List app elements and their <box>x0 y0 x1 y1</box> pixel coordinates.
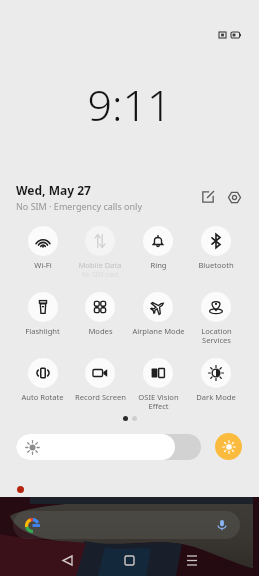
button[interactable]: Recents <box>176 544 207 576</box>
staticText: Auto Rotate <box>21 392 64 402</box>
button[interactable]: OSIE Vision Effect <box>129 354 187 420</box>
button[interactable]: Modes <box>71 288 129 354</box>
button[interactable] <box>13 511 240 539</box>
button[interactable]: Home <box>114 544 145 576</box>
button[interactable]: Flashlight <box>14 288 71 354</box>
button[interactable]: Ring <box>129 222 187 288</box>
button[interactable]: Mobile Data <box>71 222 129 288</box>
button[interactable]: Auto Rotate <box>14 354 71 420</box>
staticText: Modes <box>88 326 113 336</box>
button[interactable]: Settings <box>221 184 247 210</box>
staticText: Location Services <box>201 326 232 345</box>
button[interactable]: Location Services <box>187 288 245 354</box>
button[interactable]: Wi-Fi <box>14 222 71 288</box>
button[interactable]: Back <box>52 544 83 576</box>
staticText: Mobile Data <box>78 260 122 270</box>
button[interactable]: Bluetooth <box>187 222 245 288</box>
staticText: Wed, May 27 <box>16 182 91 198</box>
staticText: No SIM · Emergency calls only <box>16 200 143 212</box>
staticText: OSIE Vision Effect <box>138 392 179 411</box>
staticText: Wi-Fi <box>34 260 52 270</box>
staticText: 9:11 <box>0 75 259 134</box>
staticText: Flashlight <box>25 326 60 336</box>
staticText: Bluetooth <box>198 260 234 270</box>
button[interactable] <box>16 434 201 460</box>
staticText: No SIM card <box>81 270 119 279</box>
button[interactable]: Edit tiles <box>196 185 220 209</box>
staticText: Ring <box>150 260 167 270</box>
button[interactable]: Dark Mode <box>187 354 245 420</box>
staticText: Airplane Mode <box>132 326 185 336</box>
button[interactable]: Record Screen <box>71 354 129 420</box>
staticText: Record Screen <box>75 392 126 402</box>
button[interactable]: Auto brightness <box>215 433 242 460</box>
button[interactable]: Airplane Mode <box>129 288 187 354</box>
staticText: Dark Mode <box>196 392 236 402</box>
